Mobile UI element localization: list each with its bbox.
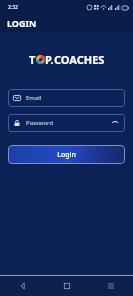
button[interactable]: Email bbox=[8, 89, 125, 107]
staticText: LOGIN bbox=[7, 17, 37, 29]
staticText: T bbox=[29, 52, 36, 67]
button[interactable]: Recent apps bbox=[89, 276, 133, 296]
staticText: Login bbox=[57, 150, 76, 160]
button[interactable]: Show password bbox=[110, 118, 120, 128]
button[interactable]: Home bbox=[45, 276, 89, 296]
staticText: 2:32 bbox=[8, 4, 18, 11]
staticText: COACHES bbox=[54, 52, 105, 67]
button[interactable]: Login bbox=[8, 145, 125, 164]
staticText: P. bbox=[45, 52, 54, 67]
button[interactable]: Password bbox=[8, 114, 125, 132]
staticText: Email bbox=[26, 94, 42, 102]
button[interactable]: Back bbox=[0, 276, 45, 296]
staticText: Password bbox=[26, 119, 54, 127]
